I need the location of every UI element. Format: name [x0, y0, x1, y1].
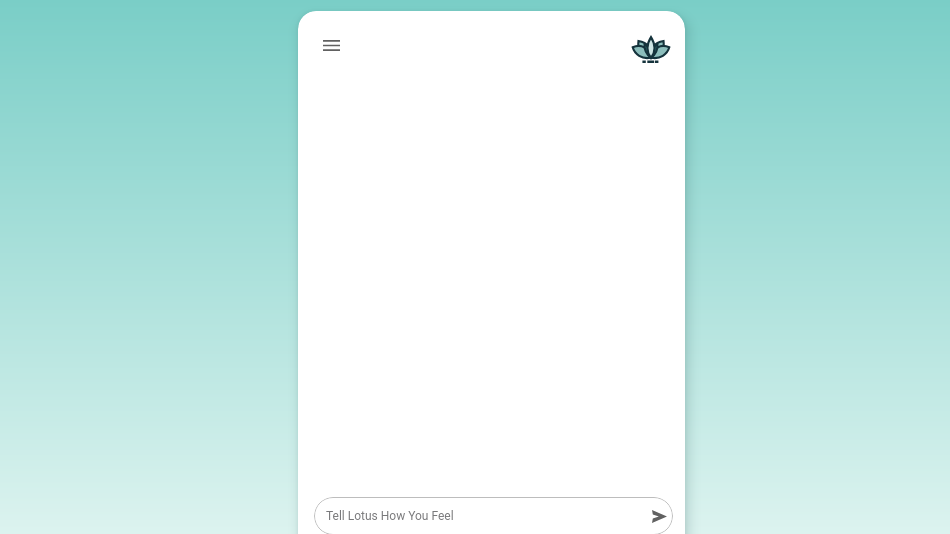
staticText: Tell Lotus How You Feel	[326, 509, 454, 523]
button[interactable]: Lotus	[625, 23, 677, 75]
button[interactable]: Send	[645, 502, 673, 530]
button[interactable]: Tell Lotus How You Feel	[314, 497, 673, 534]
button[interactable]: Menu	[311, 25, 352, 66]
